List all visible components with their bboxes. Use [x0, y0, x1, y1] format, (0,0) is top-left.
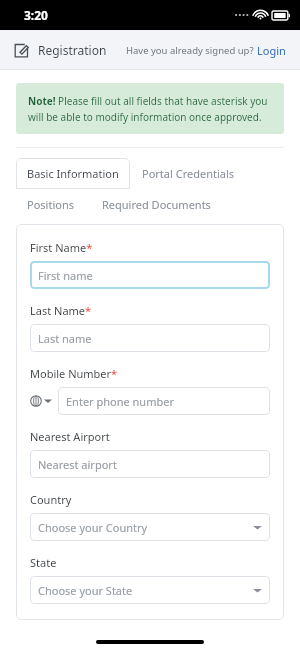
- staticText: First Name*: [30, 240, 93, 255]
- staticText: Last name: [38, 331, 92, 346]
- staticText: Required Documents: [102, 197, 211, 212]
- staticText: Mobile Number*: [30, 366, 118, 381]
- staticText: Last Name*: [30, 303, 92, 318]
- other: Signal: [235, 11, 249, 19]
- other: Registration: [14, 43, 29, 58]
- staticText: Country: [30, 492, 72, 507]
- button[interactable]: Select country code: [30, 395, 58, 407]
- button[interactable]: Login: [257, 43, 286, 58]
- staticText: Note! Please fill out all fields that ha…: [28, 94, 272, 123]
- other: Select country code: [30, 395, 42, 407]
- other: Wi-Fi: [254, 10, 267, 20]
- staticText: First name: [38, 268, 93, 283]
- staticText: Login: [257, 43, 286, 58]
- button[interactable]: Positions: [16, 189, 85, 220]
- staticText: Nearest airport: [38, 457, 117, 472]
- staticText: Have you already signed up?: [126, 44, 254, 57]
- staticText: Basic Information: [27, 166, 119, 181]
- button[interactable]: Enter phone number: [58, 387, 270, 415]
- staticText: Choose your Country: [38, 520, 148, 535]
- staticText: Registration: [38, 42, 107, 58]
- other: Battery: [272, 11, 290, 20]
- button[interactable]: Portal Credentials: [130, 158, 247, 189]
- staticText: Enter phone number: [66, 394, 174, 409]
- button[interactable]: Registration: [14, 42, 107, 58]
- button[interactable]: Nearest airport: [30, 450, 270, 478]
- button[interactable]: Last name: [30, 324, 270, 352]
- staticText: 3:20: [24, 7, 48, 23]
- button[interactable]: Basic Information: [16, 158, 130, 189]
- button[interactable]: Required Documents: [91, 189, 222, 220]
- button[interactable]: Choose your State: [30, 576, 270, 604]
- staticText: State: [30, 555, 57, 570]
- staticText: Portal Credentials: [142, 166, 235, 181]
- staticText: Nearest Airport: [30, 429, 110, 444]
- staticText: Positions: [27, 197, 74, 212]
- button[interactable]: First name: [30, 261, 270, 289]
- button[interactable]: Choose your Country: [30, 513, 270, 541]
- staticText: Choose your State: [38, 583, 133, 598]
